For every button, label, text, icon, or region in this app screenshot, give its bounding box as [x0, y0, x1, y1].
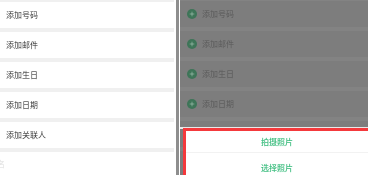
button[interactable]: 拍摄照片	[186, 131, 368, 152]
other: Add 添加关联人	[187, 129, 197, 139]
staticText: 添加号码	[6, 9, 38, 21]
button[interactable]: 添加日期	[0, 92, 174, 118]
staticText: 添加生日	[6, 69, 38, 81]
staticText: 添加关联人	[202, 128, 242, 140]
staticText: 添加日期	[202, 98, 234, 110]
button[interactable]: 添加生日	[0, 62, 174, 88]
staticText: 添加关联人	[6, 129, 46, 141]
staticText: 添加号码	[202, 8, 234, 20]
staticText: 添加邮件	[6, 39, 38, 51]
button[interactable]: 添加号码	[0, 2, 174, 28]
button[interactable]: Add 添加关联人	[180, 121, 368, 147]
other: Add 添加日期	[187, 99, 197, 109]
staticText: 选择照片	[261, 162, 293, 174]
button[interactable]: 添加关联人	[0, 122, 174, 148]
staticText: 拍摄照片	[261, 136, 293, 148]
staticText: 添加生日	[202, 68, 234, 80]
button[interactable]: Add 添加日期	[180, 91, 368, 117]
staticText: 姓名	[0, 158, 5, 170]
other: Add 添加生日	[187, 69, 197, 79]
other: Add 添加号码	[187, 9, 197, 19]
staticText: 添加邮件	[202, 38, 234, 50]
staticText: 添加日期	[6, 99, 38, 111]
button[interactable]: Add 添加生日	[180, 61, 368, 87]
button[interactable]: Add 添加邮件	[180, 31, 368, 57]
other: Add 添加邮件	[187, 39, 197, 49]
button[interactable]: 添加邮件	[0, 32, 174, 58]
button[interactable]: 选择照片	[186, 153, 368, 175]
button[interactable]: Add 添加号码	[180, 1, 368, 27]
